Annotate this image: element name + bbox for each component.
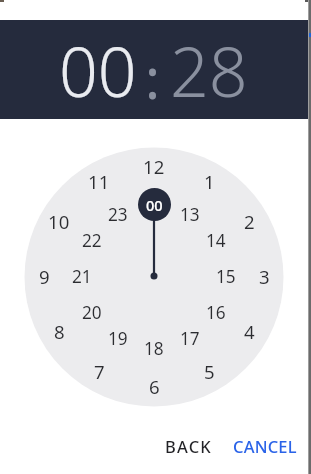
- button[interactable]: 6: [139, 373, 169, 399]
- button[interactable]: 1: [194, 168, 224, 194]
- staticText: 8: [54, 319, 65, 344]
- staticText: 6: [149, 374, 160, 399]
- button[interactable]: 19: [103, 325, 133, 351]
- button[interactable]: 23: [103, 201, 133, 227]
- staticText: 20: [82, 301, 102, 324]
- button[interactable]: CANCEL: [230, 432, 300, 460]
- staticText: 5: [204, 359, 215, 384]
- button[interactable]: 16: [201, 299, 231, 325]
- staticText: 2: [244, 209, 255, 234]
- button[interactable]: 2: [234, 208, 264, 234]
- button[interactable]: 9: [29, 263, 59, 289]
- staticText: 11: [88, 169, 110, 194]
- staticText: :: [145, 39, 161, 115]
- staticText: 17: [180, 327, 200, 350]
- staticText: 15: [216, 265, 236, 288]
- button[interactable]: 7: [84, 358, 114, 384]
- button[interactable]: 12: [139, 153, 169, 179]
- button[interactable]: 14: [201, 227, 231, 253]
- staticText: 3: [259, 264, 270, 289]
- button[interactable]: BACK: [156, 432, 220, 460]
- button[interactable]: 20: [77, 299, 107, 325]
- staticText: 28: [170, 24, 248, 105]
- staticText: 1: [204, 169, 215, 194]
- button[interactable]: 5: [194, 358, 224, 384]
- staticText: 00: [146, 195, 163, 215]
- button[interactable]: 3: [249, 263, 279, 289]
- staticText: CANCEL: [233, 435, 297, 457]
- staticText: 10: [48, 209, 70, 234]
- staticText: 21: [72, 265, 92, 288]
- button[interactable]: 00: [138, 188, 171, 221]
- staticText: 13: [180, 203, 200, 226]
- staticText: 00: [59, 24, 137, 105]
- button[interactable]: 15: [211, 263, 241, 289]
- button[interactable]: 11: [84, 168, 114, 194]
- button[interactable]: 17: [175, 325, 205, 351]
- staticText: BACK: [165, 435, 212, 457]
- button[interactable]: 10: [44, 208, 74, 234]
- staticText: 14: [206, 229, 226, 252]
- button[interactable]: 22: [77, 227, 107, 253]
- staticText: 22: [82, 229, 102, 252]
- button[interactable]: 4: [234, 318, 264, 344]
- button[interactable]: 18: [139, 335, 169, 361]
- staticText: 4: [244, 319, 255, 344]
- button[interactable]: 28: [159, 24, 259, 105]
- staticText: 18: [144, 337, 164, 360]
- button[interactable]: 13: [175, 201, 205, 227]
- staticText: 7: [94, 359, 105, 384]
- button[interactable]: 8: [44, 318, 74, 344]
- staticText: 9: [39, 264, 50, 289]
- staticText: 12: [143, 154, 165, 179]
- staticText: 19: [108, 327, 128, 350]
- staticText: 16: [206, 301, 226, 324]
- button[interactable]: 00: [48, 24, 148, 105]
- button[interactable]: 21: [67, 263, 97, 289]
- staticText: 23: [108, 203, 128, 226]
